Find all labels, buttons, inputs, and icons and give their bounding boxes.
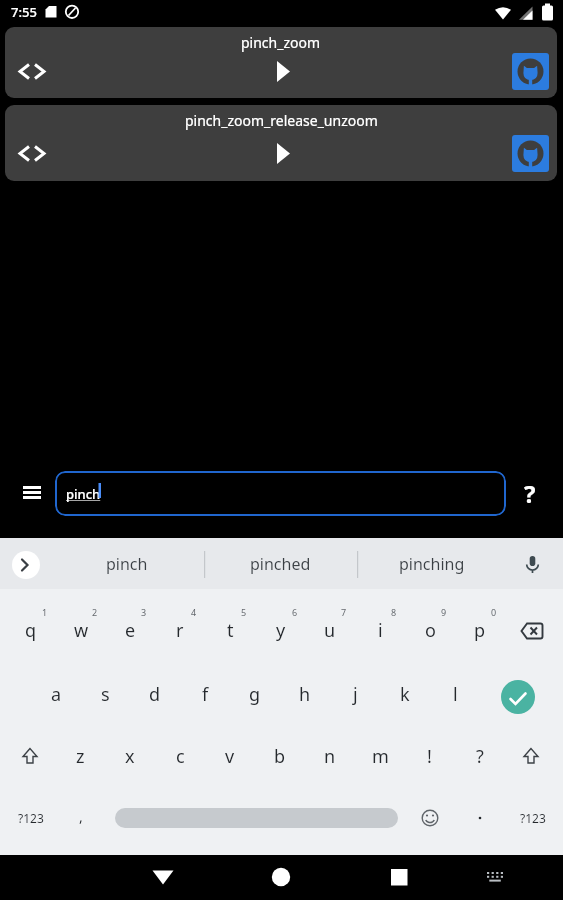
staticText: m	[372, 744, 389, 769]
button[interactable]	[14, 54, 60, 90]
button[interactable]	[14, 136, 60, 172]
button[interactable]: m	[357, 733, 403, 779]
staticText: 9	[441, 606, 447, 618]
staticText: j	[353, 682, 358, 707]
button[interactable]: i	[357, 607, 403, 653]
button[interactable]: a	[33, 671, 79, 717]
button[interactable]: n	[307, 733, 353, 779]
staticText: u	[324, 618, 336, 643]
button[interactable]: u	[307, 607, 353, 653]
staticText: pinch_zoom_release_unzoom	[185, 111, 378, 130]
button[interactable]: ?123	[6, 798, 56, 838]
button[interactable]	[477, 860, 513, 894]
button[interactable]: pinched	[220, 549, 340, 579]
staticText: w	[74, 618, 89, 643]
button[interactable]: s	[82, 671, 128, 717]
button[interactable]: j	[332, 671, 378, 717]
button[interactable]: ?	[510, 473, 550, 513]
staticText: e	[125, 618, 136, 643]
staticText: ,	[79, 807, 83, 826]
button[interactable]	[14, 475, 50, 511]
button[interactable]: h	[282, 671, 328, 717]
staticText: h	[299, 682, 311, 707]
button[interactable]	[145, 860, 181, 894]
button[interactable]: e	[107, 607, 153, 653]
staticText: 5	[241, 606, 247, 618]
button[interactable]: v	[207, 733, 253, 779]
staticText: 2	[92, 606, 98, 618]
button[interactable]	[260, 54, 300, 90]
staticText: pinch	[66, 485, 101, 503]
staticText: 8	[391, 606, 397, 618]
button[interactable]: d	[132, 671, 178, 717]
staticText: 7:55	[11, 3, 37, 21]
staticText: 1	[42, 606, 48, 618]
button[interactable]	[381, 860, 417, 894]
button[interactable]: b	[257, 733, 303, 779]
staticText: ?	[476, 744, 484, 769]
staticText: 0	[491, 606, 497, 618]
staticText: pinch	[106, 553, 148, 575]
staticText: ?123	[520, 810, 546, 826]
staticText: x	[125, 744, 135, 769]
button[interactable]	[508, 607, 554, 653]
button[interactable]: ,	[61, 796, 101, 836]
button[interactable]	[512, 53, 549, 90]
button[interactable]: p	[457, 607, 503, 653]
staticText: 6	[292, 606, 298, 618]
button[interactable]: x	[107, 733, 153, 779]
staticText: pinched	[250, 553, 311, 575]
staticText: o	[425, 618, 436, 643]
button[interactable]	[8, 733, 52, 779]
staticText: ?	[524, 477, 536, 510]
button[interactable]	[263, 860, 299, 894]
staticText: pinching	[399, 553, 465, 575]
button[interactable]	[509, 733, 553, 779]
button[interactable]: q	[8, 607, 54, 653]
button[interactable]	[414, 802, 446, 834]
staticText: p	[474, 618, 486, 643]
staticText: q	[25, 618, 37, 643]
staticText: !	[427, 744, 432, 769]
button[interactable]: l	[432, 671, 478, 717]
button[interactable]	[501, 680, 535, 714]
button[interactable]: c	[157, 733, 203, 779]
staticText: ?123	[18, 810, 44, 826]
button[interactable]: ?	[457, 733, 503, 779]
button[interactable]: pinching	[372, 549, 492, 579]
staticText: l	[453, 682, 458, 707]
button[interactable]	[12, 551, 40, 579]
staticText: i	[378, 618, 383, 643]
button[interactable]	[260, 136, 300, 172]
staticText: b	[274, 744, 286, 769]
staticText: k	[400, 682, 410, 707]
staticText: v	[225, 744, 235, 769]
staticText: f	[202, 682, 209, 707]
staticText: 3	[141, 606, 147, 618]
staticText: y	[276, 618, 286, 643]
staticText: n	[324, 744, 336, 769]
button[interactable]: !	[406, 733, 452, 779]
button[interactable]: f	[182, 671, 228, 717]
staticText: c	[176, 744, 185, 769]
staticText: 4	[191, 606, 197, 618]
button[interactable]: pinch	[55, 471, 506, 516]
button[interactable]: y	[258, 607, 304, 653]
staticText: g	[249, 682, 261, 707]
button[interactable]	[512, 135, 549, 172]
button[interactable]: g	[232, 671, 278, 717]
button[interactable]: ?123	[508, 798, 558, 838]
staticText: d	[149, 682, 161, 707]
button[interactable]	[115, 808, 398, 828]
button[interactable]: o	[407, 607, 453, 653]
button[interactable]: t	[207, 607, 253, 653]
button[interactable]: z	[57, 733, 103, 779]
staticText: s	[101, 682, 110, 707]
button[interactable]: pinch	[67, 549, 187, 579]
staticText: pinch_zoom	[241, 33, 321, 52]
staticText: a	[51, 682, 62, 707]
button[interactable]: r	[157, 607, 203, 653]
button[interactable]: k	[382, 671, 428, 717]
staticText: z	[76, 744, 85, 769]
button[interactable]: w	[58, 607, 104, 653]
